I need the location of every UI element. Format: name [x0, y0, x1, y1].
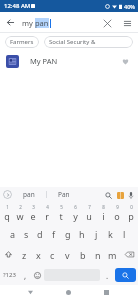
button[interactable]: Back [24, 286, 37, 299]
staticText: b [80, 249, 86, 261]
button[interactable]: v [60, 244, 75, 265]
staticText: 2 [19, 204, 22, 210]
button[interactable]: 9 [110, 202, 124, 223]
button[interactable]: Backspace [120, 244, 138, 265]
staticText: 3 [32, 204, 35, 210]
staticText: w [16, 210, 24, 222]
staticText: 40% [124, 3, 135, 10]
staticText: o [114, 210, 120, 222]
button[interactable]: a [6, 223, 19, 244]
button[interactable]: g [61, 223, 75, 244]
button[interactable]: z [17, 244, 31, 265]
staticText: c [50, 249, 55, 261]
staticText: my [22, 18, 35, 28]
button[interactable]: Options [119, 15, 135, 31]
staticText: p [128, 210, 134, 222]
staticText: y [73, 210, 78, 222]
button[interactable]: m [105, 244, 120, 265]
staticText: z [22, 249, 27, 261]
button[interactable]: Stickers [114, 189, 126, 201]
staticText: 8 [102, 204, 105, 210]
staticText: Farmers [10, 38, 34, 46]
button[interactable]: d [33, 223, 47, 244]
button[interactable]: 7 [82, 202, 96, 223]
button[interactable]: ?123 [0, 265, 19, 285]
button[interactable]: Favorite [118, 54, 132, 68]
staticText: q [4, 210, 10, 222]
button[interactable]: More [3, 190, 12, 199]
button[interactable]: Clear [99, 15, 115, 31]
button[interactable]: , [19, 265, 31, 285]
staticText: t [59, 210, 63, 222]
button[interactable]: 2 [13, 202, 26, 223]
button[interactable]: n [90, 244, 105, 265]
staticText: ?123 [3, 271, 16, 279]
staticText: 9 [116, 204, 119, 210]
staticText: 12:48 AM [4, 2, 31, 10]
button[interactable]: j [89, 223, 103, 244]
staticText: i [102, 210, 105, 222]
staticText: 6 [74, 204, 77, 210]
button[interactable]: 5 [54, 202, 68, 223]
staticText: m [108, 249, 117, 261]
staticText: x [36, 249, 41, 261]
staticText: a [10, 228, 16, 240]
button[interactable]: s [19, 223, 33, 244]
button[interactable]: 0 [124, 202, 138, 223]
staticText: d [37, 228, 43, 240]
button[interactable]: . [101, 265, 113, 285]
staticText: , [24, 270, 27, 281]
staticText: r [45, 210, 49, 222]
staticText: e [30, 210, 36, 222]
button[interactable]: c [45, 244, 60, 265]
button[interactable]: b [75, 244, 90, 265]
button[interactable]: Emoji [31, 265, 43, 285]
button[interactable]: My PAN [0, 50, 138, 72]
button[interactable]: h [75, 223, 89, 244]
staticText: . [106, 270, 109, 281]
staticText: Pan [58, 190, 70, 199]
staticText: 1 [6, 204, 9, 210]
staticText: g [65, 228, 71, 240]
staticText: u [86, 210, 92, 222]
staticText: 5 [60, 204, 63, 210]
button[interactable]: Recents [100, 286, 113, 299]
staticText: Social Security & Pensioners [49, 38, 128, 46]
button[interactable]: Farmers [5, 36, 39, 48]
button[interactable]: f [47, 223, 61, 244]
button[interactable]: Pan [47, 187, 81, 202]
button[interactable]: 6 [68, 202, 82, 223]
staticText: v [65, 249, 70, 261]
staticText: 7 [88, 204, 91, 210]
button[interactable]: Shift [0, 244, 17, 265]
button[interactable]: Social Security & Pensioners [44, 36, 133, 48]
staticText: pan [35, 18, 49, 28]
button[interactable]: Search [115, 268, 136, 282]
staticText: n [95, 249, 101, 261]
staticText: 0 [130, 204, 133, 210]
button[interactable]: 3 [26, 202, 40, 223]
button[interactable]: Voice input [126, 189, 136, 201]
button[interactable]: 8 [96, 202, 110, 223]
staticText: 4 [46, 204, 49, 210]
button[interactable]: x [31, 244, 45, 265]
button[interactable]: Home [62, 286, 75, 299]
button[interactable]: Search suggestions [102, 189, 114, 201]
button[interactable]: l [117, 223, 131, 244]
button[interactable]: k [103, 223, 117, 244]
staticText: h [79, 228, 85, 240]
button[interactable]: 4 [40, 202, 54, 223]
button[interactable]: pan [12, 187, 46, 202]
button[interactable]: Back [2, 14, 19, 31]
staticText: My PAN [30, 56, 58, 66]
staticText: s [24, 228, 29, 240]
staticText: pan [23, 190, 35, 199]
staticText: f [52, 228, 56, 240]
button[interactable]: 1 [0, 202, 13, 223]
staticText: l [123, 228, 126, 240]
staticText: k [108, 228, 113, 240]
staticText: j [95, 228, 98, 240]
